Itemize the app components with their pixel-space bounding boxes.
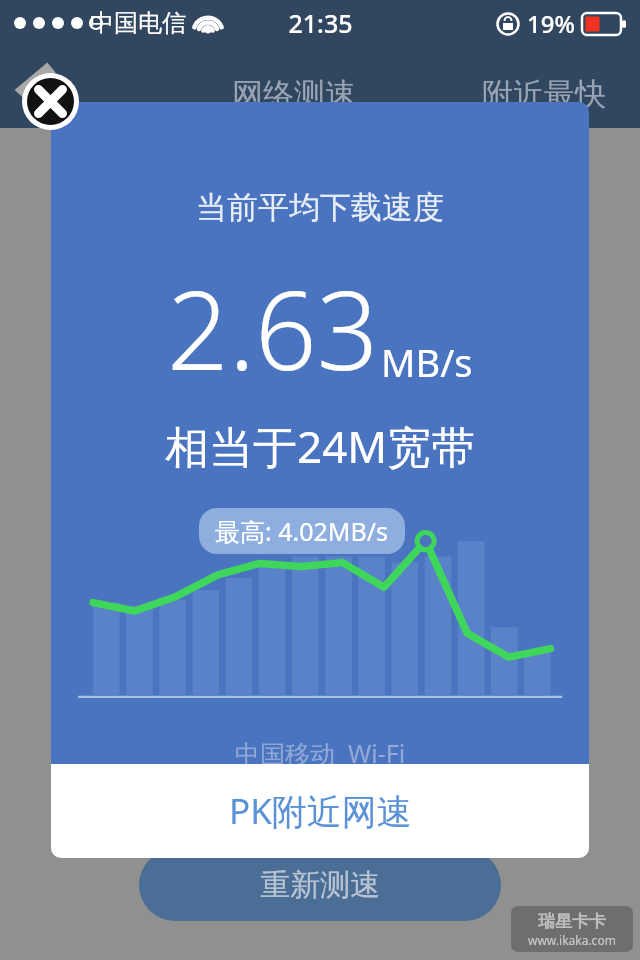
staticText: 瑞星卡卡 [538,911,606,932]
staticText: 中国电信 [90,8,186,38]
staticText: 2.63 [167,255,379,402]
button[interactable]: 重新测速 [139,849,501,921]
staticText: 重新测速 [260,866,380,904]
button[interactable]: PK附近网速 [51,764,589,858]
button[interactable]: Close [22,73,79,130]
staticText: 19% [527,7,575,40]
staticText: www.ikaka.com [528,932,616,948]
staticText: MB/s [381,336,473,388]
button[interactable]: Back [14,62,62,118]
button[interactable]: 附近最快 [482,75,606,114]
button[interactable]: 网络测速 [232,75,356,114]
staticText: 21:35 [288,6,353,40]
staticText: 当前平均下载速度 [196,188,444,227]
staticText: 最高: 4.02MB/s [215,514,389,548]
staticText: PK附近网速 [229,787,412,835]
staticText: 中国移动 Wi-Fi [235,736,406,764]
staticText: 相当于24M宽带 [165,416,476,476]
